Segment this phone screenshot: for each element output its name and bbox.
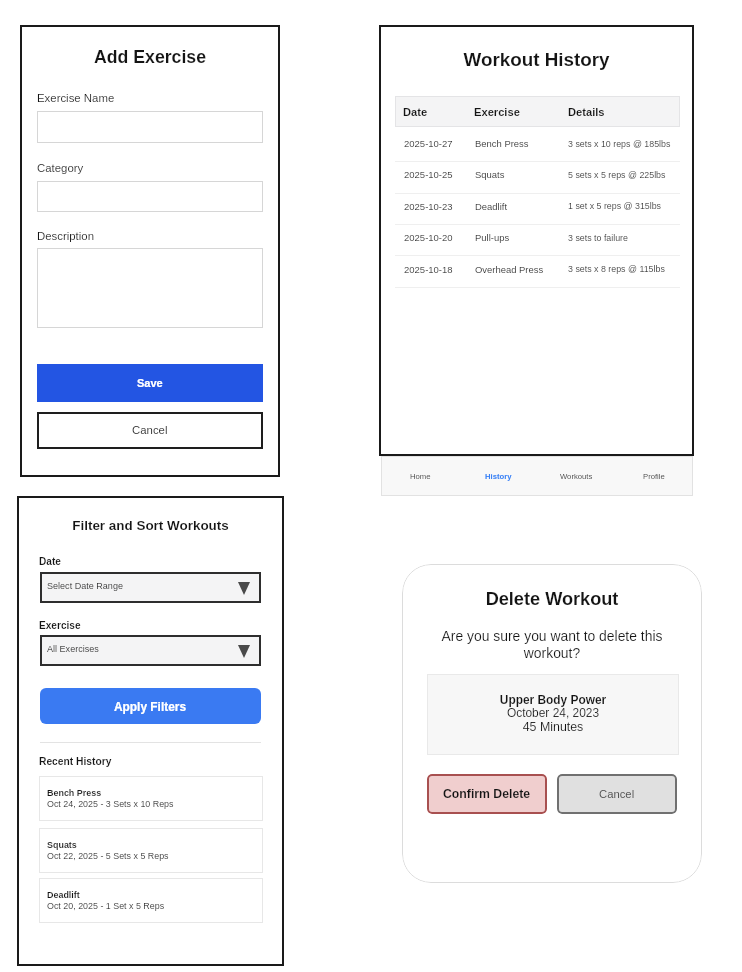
staticText: 2025-10-27	[404, 138, 453, 149]
staticText: Date	[39, 556, 61, 567]
staticText: Select Date Range	[47, 581, 123, 591]
staticText: Filter and Sort Workouts	[17, 518, 284, 533]
staticText: Cancel	[599, 788, 635, 801]
button[interactable]: Cancel	[37, 412, 263, 449]
staticText: Workout History	[379, 49, 694, 70]
staticText: Are you sure you want to delete this wor…	[428, 628, 676, 661]
button[interactable]: Workouts	[537, 456, 615, 496]
staticText: Oct 24, 2025 - 3 Sets x 10 Reps	[47, 799, 174, 809]
staticText: Apply Filters	[114, 700, 187, 713]
staticText: Upper Body Power	[427, 693, 679, 706]
staticText: 2025-10-25	[404, 169, 453, 180]
staticText: Confirm Delete	[443, 787, 531, 801]
staticText: Cancel	[132, 424, 168, 437]
button[interactable]: Squats	[39, 828, 263, 873]
button[interactable]: Deadlift	[39, 878, 263, 923]
staticText: Oct 22, 2025 - 5 Sets x 5 Reps	[47, 851, 169, 861]
staticText: October 24, 2023	[427, 706, 679, 719]
staticText: Bench Press	[47, 788, 102, 798]
staticText: History	[485, 472, 512, 481]
staticText: 2025-10-18	[404, 264, 453, 275]
button[interactable]: Confirm Delete	[427, 774, 547, 814]
staticText: Exercise	[39, 620, 81, 631]
staticText: 3 sets to failure	[568, 233, 628, 243]
staticText: Delete Workout	[402, 589, 702, 609]
button[interactable]: Apply Filters	[40, 688, 261, 724]
button[interactable]: Home	[381, 456, 459, 496]
staticText: Add Exercise	[20, 47, 280, 67]
staticText: Details	[568, 106, 605, 118]
staticText: 3 sets x 8 reps @ 115lbs	[568, 264, 665, 274]
staticText: 2025-10-20	[404, 232, 453, 243]
button[interactable]: Save	[37, 364, 263, 402]
staticText: Squats	[47, 840, 77, 850]
staticText: 1 set x 5 reps @ 315lbs	[568, 201, 662, 211]
staticText: Pull-ups	[475, 232, 510, 243]
staticText: Save	[137, 377, 163, 389]
staticText: 45 Minutes	[427, 720, 679, 734]
staticText: Deadlift	[475, 201, 507, 212]
staticText: Overhead Press	[475, 264, 544, 275]
staticText: Home	[410, 472, 431, 481]
button[interactable]: Select Date Range	[40, 572, 261, 603]
button[interactable]: History	[459, 456, 537, 496]
staticText: 3 sets x 10 reps @ 185lbs	[568, 139, 671, 149]
staticText: Category	[37, 162, 84, 175]
staticText: Oct 20, 2025 - 1 Set x 5 Reps	[47, 901, 165, 911]
staticText: All Exercises	[47, 644, 99, 654]
staticText: Squats	[475, 169, 505, 180]
staticText: Date	[403, 106, 428, 118]
staticText: Exercise Name	[37, 92, 115, 105]
button[interactable]: Cancel	[557, 774, 677, 814]
staticText: Recent History	[39, 756, 112, 767]
staticText: Description	[37, 230, 94, 243]
staticText: 2025-10-23	[404, 201, 453, 212]
button[interactable]: Profile	[615, 456, 693, 496]
staticText: Workouts	[560, 472, 593, 481]
staticText: Bench Press	[475, 138, 529, 149]
other: Open menu	[238, 645, 250, 658]
staticText: 5 sets x 5 reps @ 225lbs	[568, 170, 666, 180]
other: Open menu	[238, 582, 250, 595]
staticText: Deadlift	[47, 890, 80, 900]
staticText: Exercise	[474, 106, 520, 118]
button[interactable]: Bench Press	[39, 776, 263, 821]
button[interactable]: All Exercises	[40, 635, 261, 666]
staticText: Profile	[643, 472, 665, 481]
